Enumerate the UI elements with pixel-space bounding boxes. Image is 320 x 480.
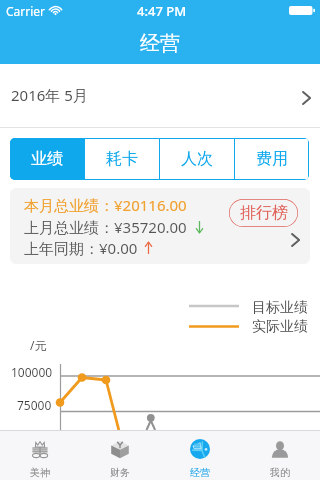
staticText: 目标业绩 xyxy=(252,299,308,317)
staticText: 100000 xyxy=(11,364,53,380)
staticText: 美神 xyxy=(30,466,50,479)
button[interactable]: 排行榜 xyxy=(229,199,298,227)
button[interactable]: 费用 xyxy=(235,139,308,179)
staticText: 排行榜 xyxy=(240,203,288,223)
staticText: 耗卡 xyxy=(106,149,138,169)
staticText: 财务 xyxy=(110,466,130,479)
other: 选择月份 xyxy=(302,91,311,105)
button[interactable]: 经营 xyxy=(160,431,240,480)
staticText: 人次 xyxy=(181,149,213,169)
staticText: 上月总业绩：¥35720.00 xyxy=(24,217,187,237)
button[interactable]: 财务 xyxy=(80,431,160,480)
staticText: 2016年 5月 xyxy=(11,85,88,105)
staticText: 实际业绩 xyxy=(252,318,308,336)
staticText: 费用 xyxy=(256,149,288,169)
staticText: 业绩 xyxy=(31,149,63,169)
staticText: 75000 xyxy=(17,397,52,413)
other: 查看详情 xyxy=(291,233,300,247)
staticText: 经营 xyxy=(140,31,180,56)
staticText: /元 xyxy=(30,337,47,353)
staticText: 经营 xyxy=(190,466,210,479)
staticText: 我的 xyxy=(270,466,290,479)
button[interactable]: 我的 xyxy=(240,431,320,480)
staticText: Carrier xyxy=(6,3,46,19)
button[interactable]: 本月总业绩：¥20116.00 xyxy=(10,188,310,264)
staticText: 4:47 PM xyxy=(137,2,187,20)
staticText: 本月总业绩：¥20116.00 xyxy=(24,195,187,215)
button[interactable]: 2016年 5月 xyxy=(0,64,320,126)
staticText: 上年同期：¥0.00 xyxy=(24,238,138,258)
button[interactable]: 美神 xyxy=(0,431,80,480)
button[interactable]: 业绩 xyxy=(10,138,84,180)
button[interactable]: 耗卡 xyxy=(85,139,159,179)
button[interactable]: 人次 xyxy=(160,139,234,179)
